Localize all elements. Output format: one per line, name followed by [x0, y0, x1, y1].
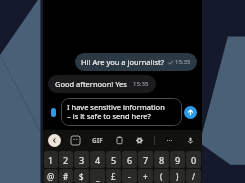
button[interactable]: / [186, 169, 201, 183]
button[interactable]: ( [154, 169, 169, 183]
staticText: 15:35 [133, 80, 149, 88]
button[interactable]: £ [106, 169, 121, 183]
staticText: Good afternoon! Yes [55, 79, 127, 89]
staticText: ) [176, 171, 179, 182]
staticText: 9 [175, 154, 181, 166]
button[interactable]: + [138, 169, 153, 183]
button[interactable]: @ [44, 169, 58, 183]
staticText: # [63, 171, 69, 182]
button[interactable]: _ [90, 169, 105, 183]
button[interactable]: 8 [154, 151, 169, 168]
button[interactable]: 1 [44, 151, 58, 168]
button[interactable]: # [59, 169, 73, 183]
staticText: 5 [111, 154, 117, 166]
staticText: $ [79, 171, 84, 182]
button[interactable]: 0 [186, 151, 201, 168]
staticText: 7 [143, 154, 149, 166]
button[interactable]: Voice input [184, 134, 197, 147]
button[interactable]: I have sensitive information – is it saf… [61, 98, 182, 126]
button[interactable]: 4 [90, 151, 105, 168]
button[interactable]: Settings [133, 134, 146, 147]
button[interactable]: - [122, 169, 137, 183]
staticText: 2 [63, 154, 69, 166]
button[interactable]: Back [48, 134, 61, 147]
staticText: / [192, 171, 195, 182]
button[interactable]: GIF [90, 134, 105, 147]
staticText: 4 [95, 154, 101, 166]
staticText: + [143, 171, 148, 182]
button[interactable]: Hi! Are you a journalist? [75, 53, 197, 71]
button[interactable]: $ [74, 169, 89, 183]
staticText: 6 [127, 154, 133, 166]
button[interactable]: 9 [170, 151, 185, 168]
staticText: @ [47, 171, 55, 182]
button[interactable]: 5 [106, 151, 121, 168]
staticText: GIF [92, 136, 103, 145]
staticText: _ [96, 171, 100, 182]
button[interactable]: 2 [59, 151, 73, 168]
staticText: 8 [159, 154, 165, 166]
staticText: Hi! Are you a journalist? [81, 57, 164, 67]
button[interactable]: Send [184, 106, 197, 119]
button[interactable]: Attach file [48, 107, 59, 118]
staticText: 1 [48, 154, 54, 166]
button[interactable]: Stickers [69, 134, 82, 147]
button[interactable]: Clipboard [113, 134, 126, 147]
button[interactable]: 7 [138, 151, 153, 168]
button[interactable]: More options [163, 134, 176, 147]
staticText: 3 [79, 154, 85, 166]
staticText: 0 [191, 154, 197, 166]
staticText: 15:35 [175, 58, 191, 66]
staticText: - [128, 171, 131, 182]
button[interactable]: 6 [122, 151, 137, 168]
staticText: £ [111, 171, 116, 182]
staticText: I have sensitive information – is it saf… [67, 102, 166, 122]
button[interactable]: ) [170, 169, 185, 183]
button[interactable]: 3 [74, 151, 89, 168]
button[interactable]: Good afternoon! Yes [48, 75, 156, 93]
staticText: ( [160, 171, 163, 182]
